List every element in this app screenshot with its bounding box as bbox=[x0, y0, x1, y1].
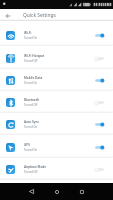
button[interactable]: Recent apps bbox=[74, 183, 90, 200]
button[interactable]: Turn off bbox=[93, 119, 106, 130]
staticText: Airplane Mode bbox=[24, 165, 47, 169]
staticText: Turned Off bbox=[24, 170, 38, 174]
button[interactable]: Turn off bbox=[93, 75, 106, 86]
button[interactable]: Back bbox=[0, 9, 23, 21]
staticText: Turned On bbox=[24, 36, 38, 40]
staticText: Bluetooth bbox=[24, 98, 40, 102]
staticText: Turned Off bbox=[24, 103, 38, 107]
button[interactable]: Wi-Fi bbox=[0, 25, 113, 46]
button[interactable]: Back bbox=[23, 183, 39, 200]
staticText: GPS bbox=[24, 143, 30, 147]
button[interactable]: Turn off bbox=[93, 142, 106, 153]
staticText: Auto Sync bbox=[24, 120, 39, 124]
staticText: Turned On bbox=[24, 81, 38, 85]
staticText: Quick Settings bbox=[23, 12, 56, 19]
staticText: Turned Off bbox=[24, 59, 38, 63]
button[interactable]: Auto Sync bbox=[0, 114, 113, 135]
button[interactable]: Turn off bbox=[93, 30, 106, 41]
staticText: Mobile Data bbox=[24, 76, 43, 80]
button[interactable]: Turn on bbox=[93, 53, 106, 64]
button[interactable]: Airplane Mode bbox=[0, 159, 113, 180]
button[interactable]: GPS bbox=[0, 137, 113, 158]
staticText: Turned On bbox=[24, 148, 38, 152]
button[interactable]: Wi-Fi Hotspot bbox=[0, 48, 113, 69]
button[interactable]: Mobile Data bbox=[0, 70, 113, 91]
staticText: Wi-Fi bbox=[24, 31, 32, 35]
staticText: Turned On bbox=[24, 125, 38, 129]
button[interactable]: Home bbox=[49, 183, 65, 200]
button[interactable]: Turn on bbox=[93, 164, 106, 175]
staticText: Wi-Fi Hotspot bbox=[24, 54, 45, 58]
button[interactable]: Bluetooth bbox=[0, 92, 113, 113]
button[interactable]: Turn on bbox=[93, 97, 106, 108]
